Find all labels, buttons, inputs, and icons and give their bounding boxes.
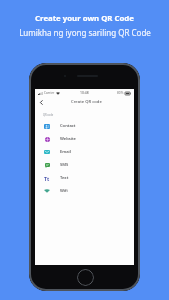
button[interactable]: Contact	[35, 119, 134, 132]
staticText: Contact	[60, 123, 76, 129]
staticText: SMS	[60, 162, 69, 168]
staticText: Create your own QR Code	[35, 13, 134, 24]
staticText: Tt	[44, 175, 50, 181]
staticText: 10:48	[80, 90, 89, 95]
staticText: Text	[60, 175, 69, 181]
staticText: Lumikha ng iyong sariling QR Code	[19, 27, 151, 38]
button[interactable]: Email	[35, 145, 134, 158]
staticText: 80%	[117, 91, 124, 95]
staticText: Carrier	[44, 91, 55, 95]
staticText: Email	[60, 149, 71, 155]
button[interactable]: Tt	[35, 171, 134, 184]
button[interactable]: SMS	[35, 158, 134, 171]
button[interactable]: Website	[35, 132, 134, 145]
button[interactable]: Back	[37, 98, 45, 106]
staticText: Website	[60, 136, 77, 142]
staticText: QR code	[43, 113, 54, 117]
button[interactable]: Wifi	[35, 184, 134, 197]
staticText: Wifi	[60, 188, 68, 194]
staticText: Create QR code	[71, 99, 102, 105]
